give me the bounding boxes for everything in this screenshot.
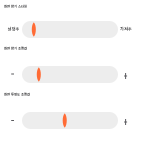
staticText: 화면 밝기 조절값 <box>4 46 27 51</box>
staticText: 화면 투명도 조절값 <box>4 92 30 97</box>
staticText: 가져주 <box>120 26 132 32</box>
button[interactable]: Adjust value <box>22 21 118 38</box>
button[interactable]: Decrease <box>7 113 18 127</box>
button[interactable]: Adjust value <box>22 112 118 129</box>
button[interactable]: Decrease <box>7 67 18 81</box>
button[interactable]: Increase <box>120 115 131 129</box>
button[interactable]: Adjust value <box>22 66 118 83</box>
staticText: 설정주 <box>8 26 20 32</box>
staticText: 화면 밝기 스타일 <box>4 4 27 9</box>
button[interactable]: Increase <box>120 69 131 83</box>
